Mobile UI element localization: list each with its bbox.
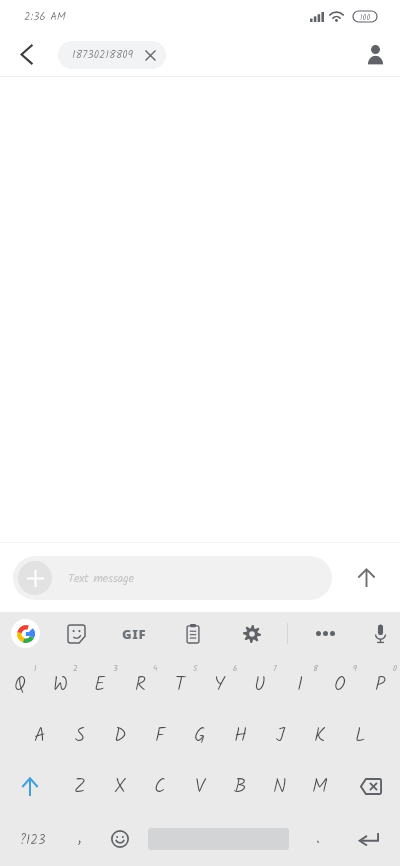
button[interactable]: H [220,710,260,761]
button[interactable]: Settings [229,612,274,655]
button[interactable]: 18730218809 [58,41,166,69]
button[interactable]: Text message [13,556,332,600]
button[interactable]: Period [300,812,336,866]
button[interactable]: O [320,655,360,710]
staticText: 2:36 AM [24,8,66,26]
button[interactable]: Comma [66,812,100,866]
staticText: 5 [193,662,198,675]
staticText: Z [74,772,86,802]
button[interactable]: Enter [345,812,393,866]
staticText: . [316,825,321,852]
staticText: 7 [273,662,277,675]
staticText: 100 [360,11,371,22]
button[interactable]: J [260,710,300,761]
button[interactable]: B [220,761,260,812]
button[interactable]: Z [60,761,100,812]
staticText: 6 [233,662,238,675]
button[interactable]: ?123 [0,812,66,866]
staticText: N [273,772,287,802]
staticText: R [135,670,146,700]
staticText: M [312,772,328,802]
staticText: GIF [122,625,147,643]
button[interactable]: Y [200,655,240,710]
button[interactable]: More options [303,612,348,655]
staticText: O [334,670,346,700]
button[interactable]: G [180,710,220,761]
button[interactable]: T [160,655,200,710]
staticText: G [194,721,206,751]
button[interactable]: Stickers [54,612,99,655]
button[interactable]: L [340,710,380,761]
staticText: D [114,721,127,751]
staticText: J [276,721,285,751]
staticText: V [195,772,206,802]
staticText: P [375,670,386,700]
button[interactable]: Emoji [100,812,140,866]
button[interactable]: X [100,761,140,812]
button[interactable]: V [180,761,220,812]
staticText: K [314,721,326,751]
staticText: , [78,824,82,851]
button[interactable]: R [120,655,160,710]
button[interactable]: D [100,710,140,761]
staticText: 9 [353,662,357,675]
staticText: L [355,721,366,751]
staticText: Y [214,670,226,700]
staticText: 2 [73,662,78,675]
button[interactable]: Send [344,556,388,600]
button[interactable]: A [20,710,60,761]
staticText: U [254,670,266,700]
staticText: F [155,721,165,751]
button[interactable]: S [60,710,100,761]
staticText: A [34,721,46,751]
staticText: I [297,670,303,700]
button[interactable]: K [300,710,340,761]
button[interactable]: C [140,761,180,812]
button[interactable]: W [40,655,80,710]
staticText: 8 [313,662,318,675]
staticText: 0 [393,662,397,675]
button[interactable]: GIF [112,612,157,655]
button[interactable]: Q [0,655,40,710]
staticText: T [175,670,186,700]
staticText: X [114,772,127,802]
staticText: W [53,670,68,700]
button[interactable]: Voice input [358,612,400,655]
button[interactable]: N [260,761,300,812]
button[interactable]: Backspace [340,761,400,812]
button[interactable]: P [360,655,400,710]
staticText: Text message [68,569,134,588]
staticText: 3 [113,662,118,675]
button[interactable]: E [80,655,120,710]
button[interactable]: U [240,655,280,710]
staticText: E [94,670,106,700]
button[interactable]: Contact details [353,33,397,76]
button[interactable]: M [300,761,340,812]
staticText: C [154,772,166,802]
button[interactable]: F [140,710,180,761]
staticText: Q [14,670,26,700]
button[interactable]: I [280,655,320,710]
button[interactable]: Back [4,33,48,76]
staticText: ?123 [20,830,46,851]
staticText: 4 [153,662,158,675]
staticText: S [75,721,85,751]
button[interactable]: Google [3,612,48,655]
staticText: 18730218809 [72,46,134,64]
staticText: H [234,721,247,751]
button[interactable]: Shift [0,761,60,812]
button[interactable]: Clipboard [170,612,215,655]
staticText: 1 [34,662,37,675]
staticText: B [234,772,247,802]
